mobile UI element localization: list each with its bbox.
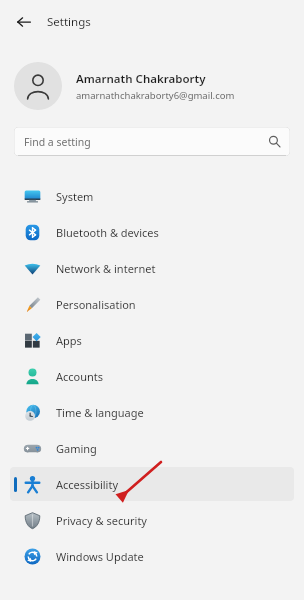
- staticText: Accounts: [56, 369, 104, 384]
- button[interactable]: Bluetooth & devices: [10, 215, 294, 249]
- button[interactable]: Accessibility: [10, 467, 294, 501]
- staticText: Personalisation: [56, 297, 136, 312]
- staticText: Apps: [56, 333, 82, 348]
- button[interactable]: Back: [9, 7, 39, 37]
- button[interactable]: System: [10, 179, 294, 213]
- staticText: System: [56, 189, 94, 204]
- staticText: Time & language: [56, 405, 144, 420]
- staticText: Settings: [47, 14, 91, 30]
- button[interactable]: Gaming: [10, 431, 294, 465]
- button[interactable]: Find a setting: [14, 127, 290, 156]
- button[interactable]: Network & internet: [10, 251, 294, 285]
- button[interactable]: Accounts: [10, 359, 294, 393]
- staticText: Network & internet: [56, 261, 156, 276]
- staticText: Bluetooth & devices: [56, 225, 159, 240]
- button[interactable]: Amarnath Chakraborty: [0, 56, 304, 116]
- staticText: Gaming: [56, 441, 97, 456]
- button[interactable]: Windows Update: [10, 539, 294, 573]
- staticText: Find a setting: [24, 135, 91, 149]
- staticText: Privacy & security: [56, 513, 147, 528]
- staticText: amarnathchakraborty6@gmail.com: [76, 89, 235, 102]
- button[interactable]: Privacy & security: [10, 503, 294, 537]
- staticText: Amarnath Chakraborty: [76, 71, 206, 87]
- button[interactable]: Apps: [10, 323, 294, 357]
- staticText: Windows Update: [56, 549, 144, 564]
- button[interactable]: Personalisation: [10, 287, 294, 321]
- button[interactable]: Time & language: [10, 395, 294, 429]
- staticText: Accessibility: [56, 477, 119, 492]
